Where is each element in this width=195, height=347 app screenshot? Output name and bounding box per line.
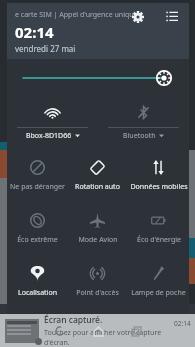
staticText: vendredi 27 mai bbox=[15, 43, 76, 54]
button[interactable]: Paramètres bbox=[127, 6, 149, 28]
staticText: Données mobiles bbox=[130, 182, 188, 192]
button[interactable]: Données mobiles bbox=[128, 150, 189, 203]
staticText: Ne pas déranger bbox=[10, 182, 65, 192]
button[interactable]: Éco d'énergie bbox=[128, 203, 189, 256]
button[interactable]: Applications récentes bbox=[128, 323, 144, 339]
staticText: Éco d'énergie bbox=[137, 235, 181, 245]
staticText: Point d'accès bbox=[76, 288, 119, 298]
staticText: 02:14 bbox=[174, 319, 191, 328]
button[interactable]: Point d'accès bbox=[67, 256, 128, 309]
button[interactable]: Ne pas déranger bbox=[7, 150, 67, 203]
button[interactable]: Localisation bbox=[7, 256, 67, 309]
staticText: Mode Avion bbox=[78, 235, 118, 245]
button[interactable]: Accueil bbox=[90, 323, 106, 339]
staticText: Lampe de poche bbox=[131, 288, 186, 298]
button[interactable]: Luminosité bbox=[7, 59, 189, 97]
button[interactable]: Retour bbox=[52, 323, 68, 339]
staticText: Écran capturé. bbox=[44, 314, 103, 326]
staticText: Éco extrême bbox=[17, 235, 58, 245]
button[interactable]: Bluetooth bbox=[108, 97, 179, 143]
button[interactable]: Lampe de poche bbox=[128, 256, 189, 309]
staticText: Localisation bbox=[18, 288, 57, 298]
staticText: 02:14 bbox=[15, 22, 54, 42]
button[interactable]: Écran capturé. bbox=[0, 314, 195, 347]
button[interactable]: Mode Avion bbox=[67, 203, 128, 256]
staticText: Touchez pour afficher votre capture d'éc… bbox=[44, 328, 174, 347]
button[interactable]: Éco extrême bbox=[7, 203, 67, 256]
button[interactable]: Rotation auto bbox=[67, 150, 128, 203]
button[interactable]: Bbox-8D1D66 bbox=[17, 97, 88, 143]
staticText: Bbox-8D1D66 bbox=[26, 131, 72, 141]
staticText: Bluetooth bbox=[123, 131, 156, 141]
button[interactable]: Liste des utilisateurs bbox=[161, 6, 183, 28]
staticText: e carte SIM | Appel d'urgence uniqu bbox=[15, 10, 134, 20]
staticText: Rotation auto bbox=[75, 182, 120, 192]
